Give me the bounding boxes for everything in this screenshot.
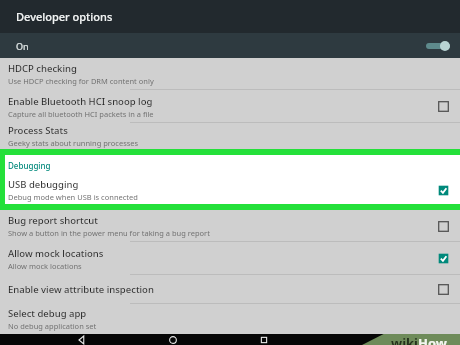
button[interactable]: Select debug app: [0, 304, 460, 334]
staticText: Allow mock locations: [8, 261, 82, 271]
staticText: Debug mode when USB is connected: [8, 192, 138, 202]
button[interactable]: Enable Bluetooth HCI snoop log: [0, 90, 460, 123]
staticText: Bug report shortcut: [8, 214, 98, 227]
staticText: Select debug app: [8, 307, 87, 320]
staticText: Show a button in the power menu for taki…: [8, 228, 210, 238]
staticText: wiki: [391, 334, 418, 345]
button[interactable]: Back: [72, 334, 92, 345]
staticText: Allow mock locations: [8, 247, 104, 260]
staticText: Geeky stats about running processes: [8, 138, 139, 148]
button[interactable]: Enable view attribute inspection: [0, 275, 460, 304]
staticText: Use HDCP checking for DRM content only: [8, 76, 154, 86]
staticText: Debugging: [8, 160, 51, 171]
staticText: On: [16, 40, 29, 52]
staticText: USB debugging: [8, 178, 79, 191]
staticText: Capture all bluetooth HCI packets in a f…: [8, 109, 154, 119]
staticText: How: [418, 334, 447, 345]
staticText: Enable view attribute inspection: [8, 283, 154, 296]
button[interactable]: Home: [163, 334, 183, 345]
button[interactable]: Bug report shortcut: [0, 210, 460, 242]
button[interactable]: Process Stats: [0, 123, 460, 149]
other: Developer options toggle: [426, 39, 450, 53]
button[interactable]: Recents: [254, 334, 274, 345]
staticText: Process Stats: [8, 124, 68, 137]
button[interactable]: HDCP checking: [0, 58, 460, 90]
staticText: No debug application set: [8, 321, 97, 331]
staticText: Enable Bluetooth HCI snoop log: [8, 95, 153, 108]
button[interactable]: USB debugging: [5, 176, 460, 204]
staticText: HDCP checking: [8, 62, 77, 75]
button[interactable]: On: [0, 33, 460, 58]
button[interactable]: Allow mock locations: [0, 242, 460, 275]
staticText: Developer options: [16, 9, 113, 24]
